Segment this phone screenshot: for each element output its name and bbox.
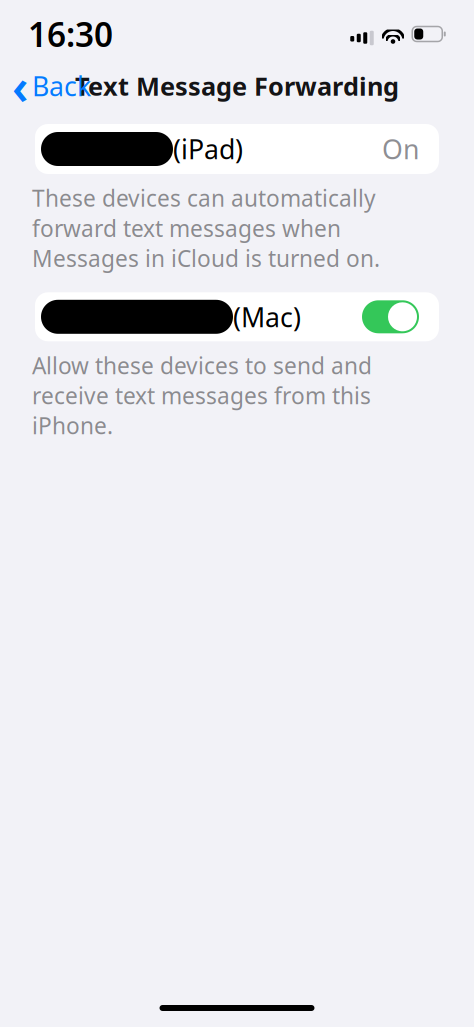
staticText: Back [32, 68, 91, 104]
staticText: These devices can automatically forward … [32, 183, 380, 273]
button[interactable]: Text message forwarding for Mac [362, 300, 419, 333]
staticText: (iPad) [173, 131, 243, 167]
button[interactable]: ‹ [0, 62, 101, 110]
button[interactable]: (iPad) [35, 124, 439, 174]
staticText: 16:30 [28, 12, 113, 56]
staticText: ‹ [12, 54, 29, 118]
staticText: (Mac) [233, 299, 301, 334]
staticText: Text Message Forwarding [75, 69, 399, 103]
staticText: Allow these devices to send and receive … [32, 350, 372, 441]
staticText: On [382, 131, 419, 167]
